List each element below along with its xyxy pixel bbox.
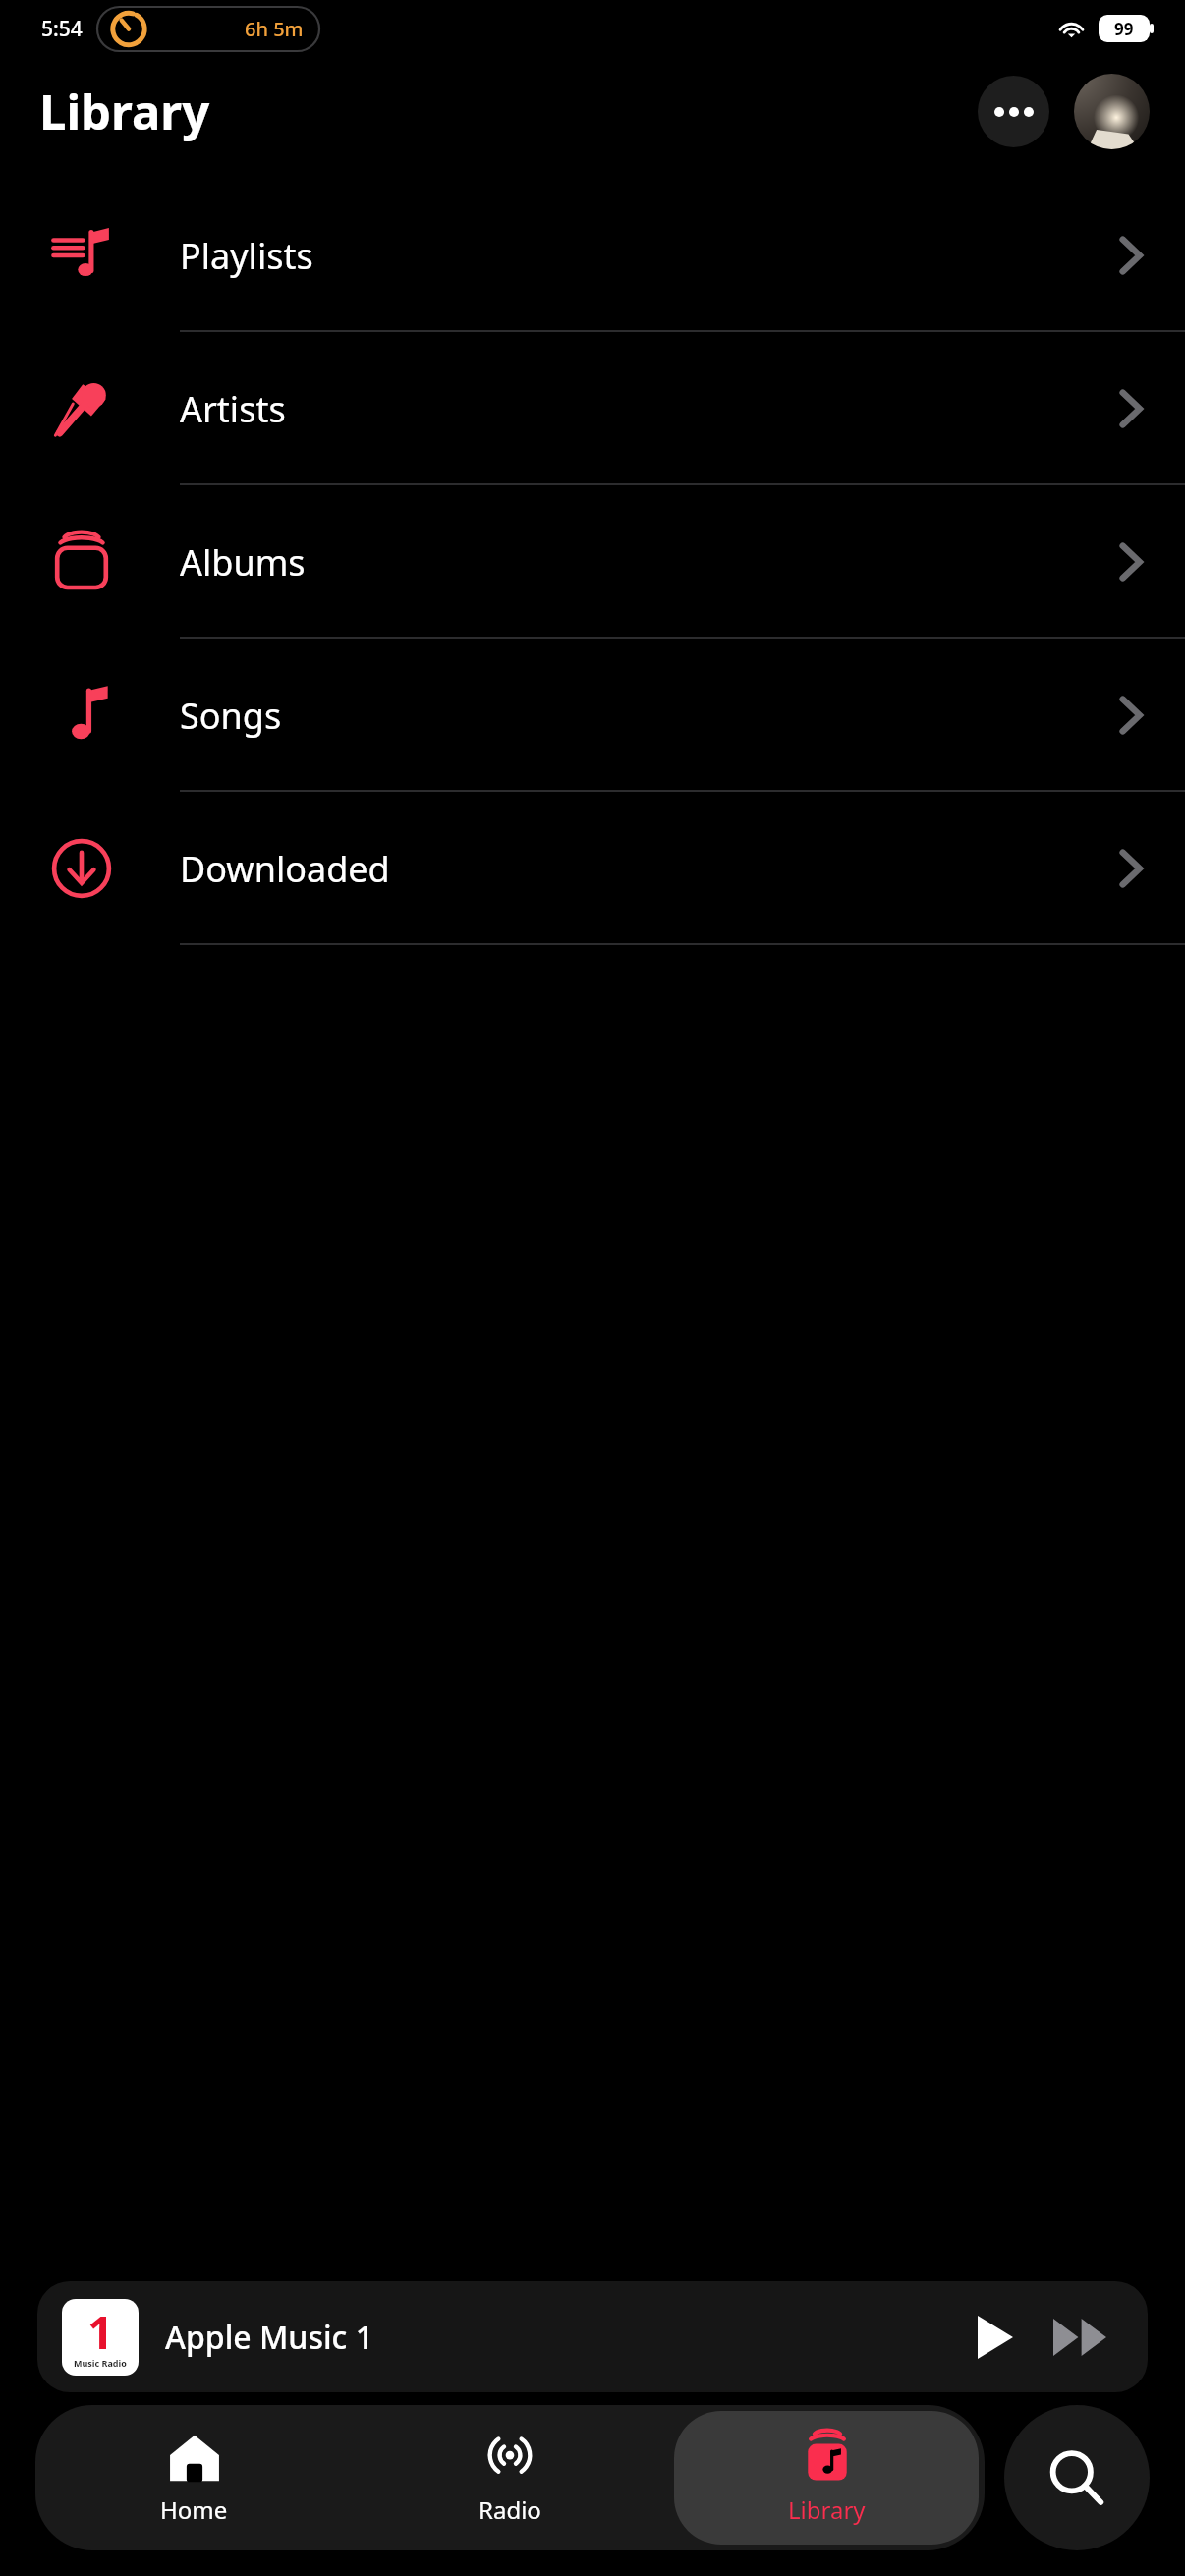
button[interactable]: Search [1004, 2405, 1150, 2550]
button[interactable]: Account [1074, 74, 1150, 149]
staticText: 5:54 [41, 15, 83, 43]
button[interactable]: 1 [37, 2281, 1148, 2392]
button[interactable]: Downloaded [0, 792, 1185, 945]
button[interactable]: Songs [0, 639, 1185, 792]
button[interactable]: More options [978, 76, 1049, 147]
staticText: 99 [1114, 18, 1134, 40]
staticText: Downloaded [180, 845, 390, 893]
button[interactable]: Radio [358, 2411, 662, 2545]
staticText: Music Radio [74, 2357, 127, 2369]
button[interactable]: Library [674, 2411, 979, 2545]
button[interactable]: Home [41, 2411, 346, 2545]
button[interactable]: Artists [0, 332, 1185, 485]
staticText: Home [160, 2493, 228, 2526]
button[interactable]: Skip forward [1049, 2307, 1110, 2368]
button[interactable]: Play [965, 2307, 1026, 2368]
staticText: Albums [180, 538, 306, 587]
staticText: Library [39, 79, 210, 144]
staticText: Artists [180, 385, 286, 433]
staticText: 6h 5m [245, 16, 304, 42]
staticText: Library [788, 2493, 866, 2526]
button[interactable]: Playlists [0, 179, 1185, 332]
staticText: Radio [479, 2493, 541, 2526]
staticText: Apple Music 1 [165, 2316, 373, 2359]
staticText: Playlists [180, 232, 313, 280]
staticText: 1 [87, 2301, 114, 2363]
staticText: Songs [180, 692, 282, 740]
button[interactable]: Albums [0, 485, 1185, 639]
